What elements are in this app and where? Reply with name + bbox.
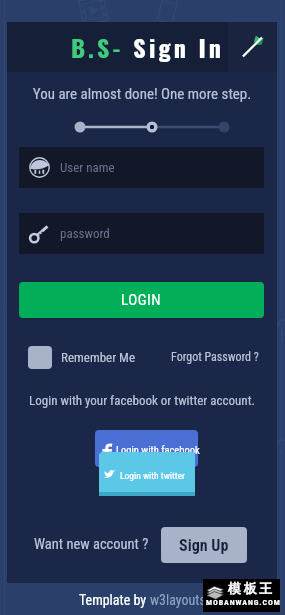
staticText: LOGIN — [121, 291, 162, 309]
button[interactable]: Remember Me — [28, 346, 136, 369]
staticText: 模板王 — [228, 580, 275, 596]
staticText: Login with your facebook or twitter acco… — [7, 393, 277, 408]
button[interactable]: LOGIN — [19, 282, 264, 318]
staticText: B.S- — [71, 29, 124, 65]
button[interactable] — [95, 430, 198, 467]
staticText: Login with facebook — [116, 444, 200, 456]
button[interactable]: Forgot Password ? — [171, 350, 259, 364]
staticText: User name — [60, 160, 115, 175]
staticText: password — [60, 226, 110, 241]
staticText: Sign Up — [179, 536, 229, 555]
staticText: MOBANWANG.COM — [206, 598, 281, 607]
button[interactable] — [99, 452, 195, 496]
staticText: Login with twitter — [120, 470, 186, 481]
staticText: Remember Me — [61, 350, 136, 365]
button[interactable]: Sign Up — [161, 527, 247, 563]
button[interactable]: password — [19, 213, 264, 254]
button[interactable]: Send — [228, 22, 277, 72]
button[interactable]: User name — [19, 147, 264, 188]
staticText: You are almost done! One more step. — [7, 85, 277, 103]
staticText: Template by — [79, 592, 150, 608]
staticText: Want new account ? — [34, 536, 149, 553]
staticText: w3layouts — [150, 592, 206, 608]
staticText: Sign In — [124, 29, 225, 65]
